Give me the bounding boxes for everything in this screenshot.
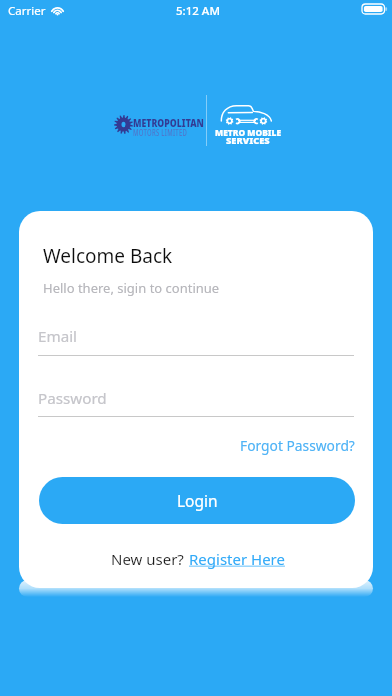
staticText: METRO MOBILE xyxy=(215,126,281,138)
staticText: 5:12 AM xyxy=(176,3,220,19)
staticText: SERVICES xyxy=(226,134,270,146)
button[interactable]: Register Here xyxy=(189,549,285,569)
staticText: New user? xyxy=(111,549,184,569)
staticText: MOTORS LIMITED xyxy=(133,127,188,138)
staticText: Email xyxy=(38,326,78,347)
staticText: Hello there, sigin to continue xyxy=(43,279,220,297)
staticText: Password xyxy=(38,388,107,409)
staticText: Carrier xyxy=(8,3,46,19)
staticText: METROPOLITAN xyxy=(133,115,204,130)
staticText: Forgot Password? xyxy=(240,436,355,455)
staticText: Welcome Back xyxy=(43,243,173,269)
staticText: Login xyxy=(177,490,218,511)
staticText: Register Here xyxy=(189,549,285,569)
button[interactable]: Login xyxy=(39,477,355,524)
button[interactable]: Forgot Password? xyxy=(238,433,357,458)
